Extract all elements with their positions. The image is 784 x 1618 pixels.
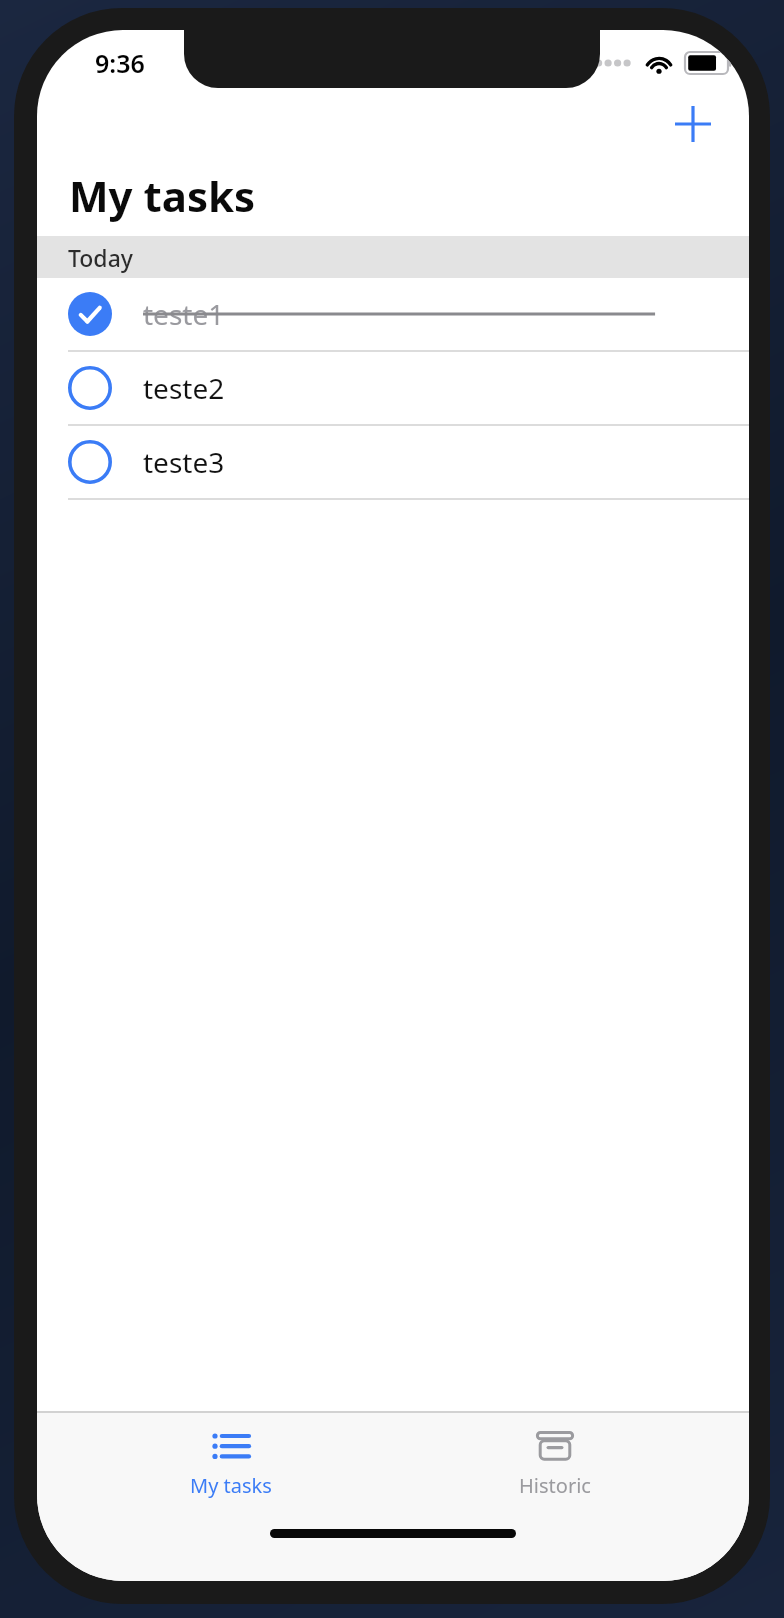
staticText: 9:36 [95,46,145,80]
button[interactable]: Historic [425,1413,685,1511]
staticText: teste2 [143,369,225,407]
button[interactable]: Add task [665,96,721,152]
staticText: My tasks [190,1472,272,1499]
staticText: Today [68,242,133,273]
button[interactable]: teste1 [37,278,749,352]
button[interactable]: teste2 [37,352,749,426]
button[interactable]: My tasks [101,1413,361,1511]
staticText: My tasks [69,167,256,224]
staticText: teste3 [143,443,225,481]
button[interactable]: teste3 [37,426,749,500]
staticText: Historic [519,1472,591,1499]
staticText: teste1 [143,295,225,333]
